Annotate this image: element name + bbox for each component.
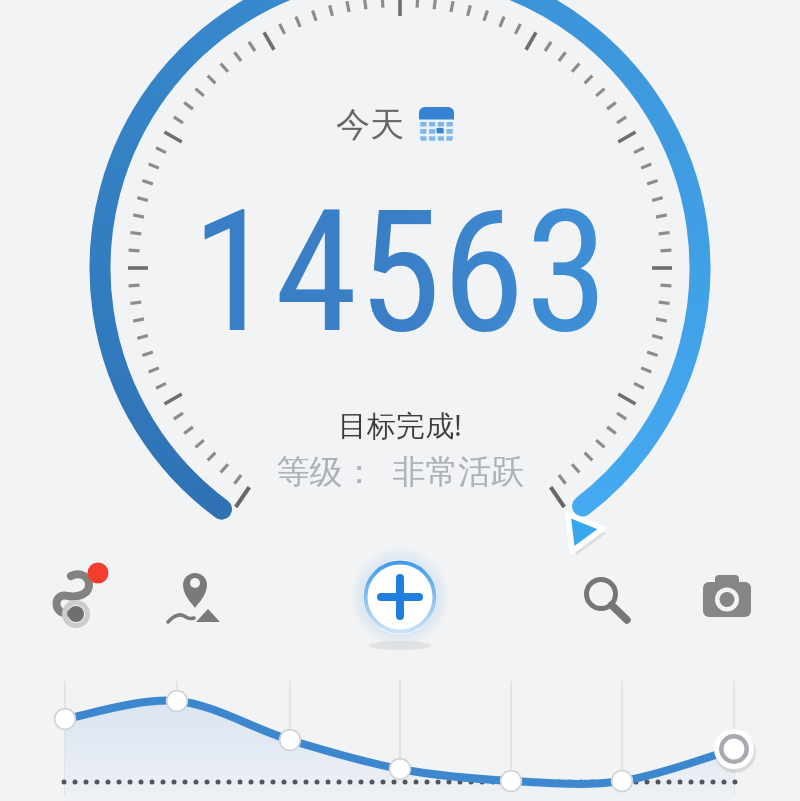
button[interactable]	[30, 555, 115, 640]
staticText: 等级： 非常活跃	[276, 448, 525, 493]
staticText: 目标完成!	[338, 405, 462, 445]
button[interactable]: 今天	[336, 102, 454, 146]
button[interactable]	[695, 560, 765, 630]
button[interactable]	[160, 555, 230, 640]
button[interactable]	[565, 560, 640, 635]
staticText: 今天	[336, 103, 404, 146]
button[interactable]	[352, 549, 448, 645]
staticText: 14563	[191, 174, 609, 371]
